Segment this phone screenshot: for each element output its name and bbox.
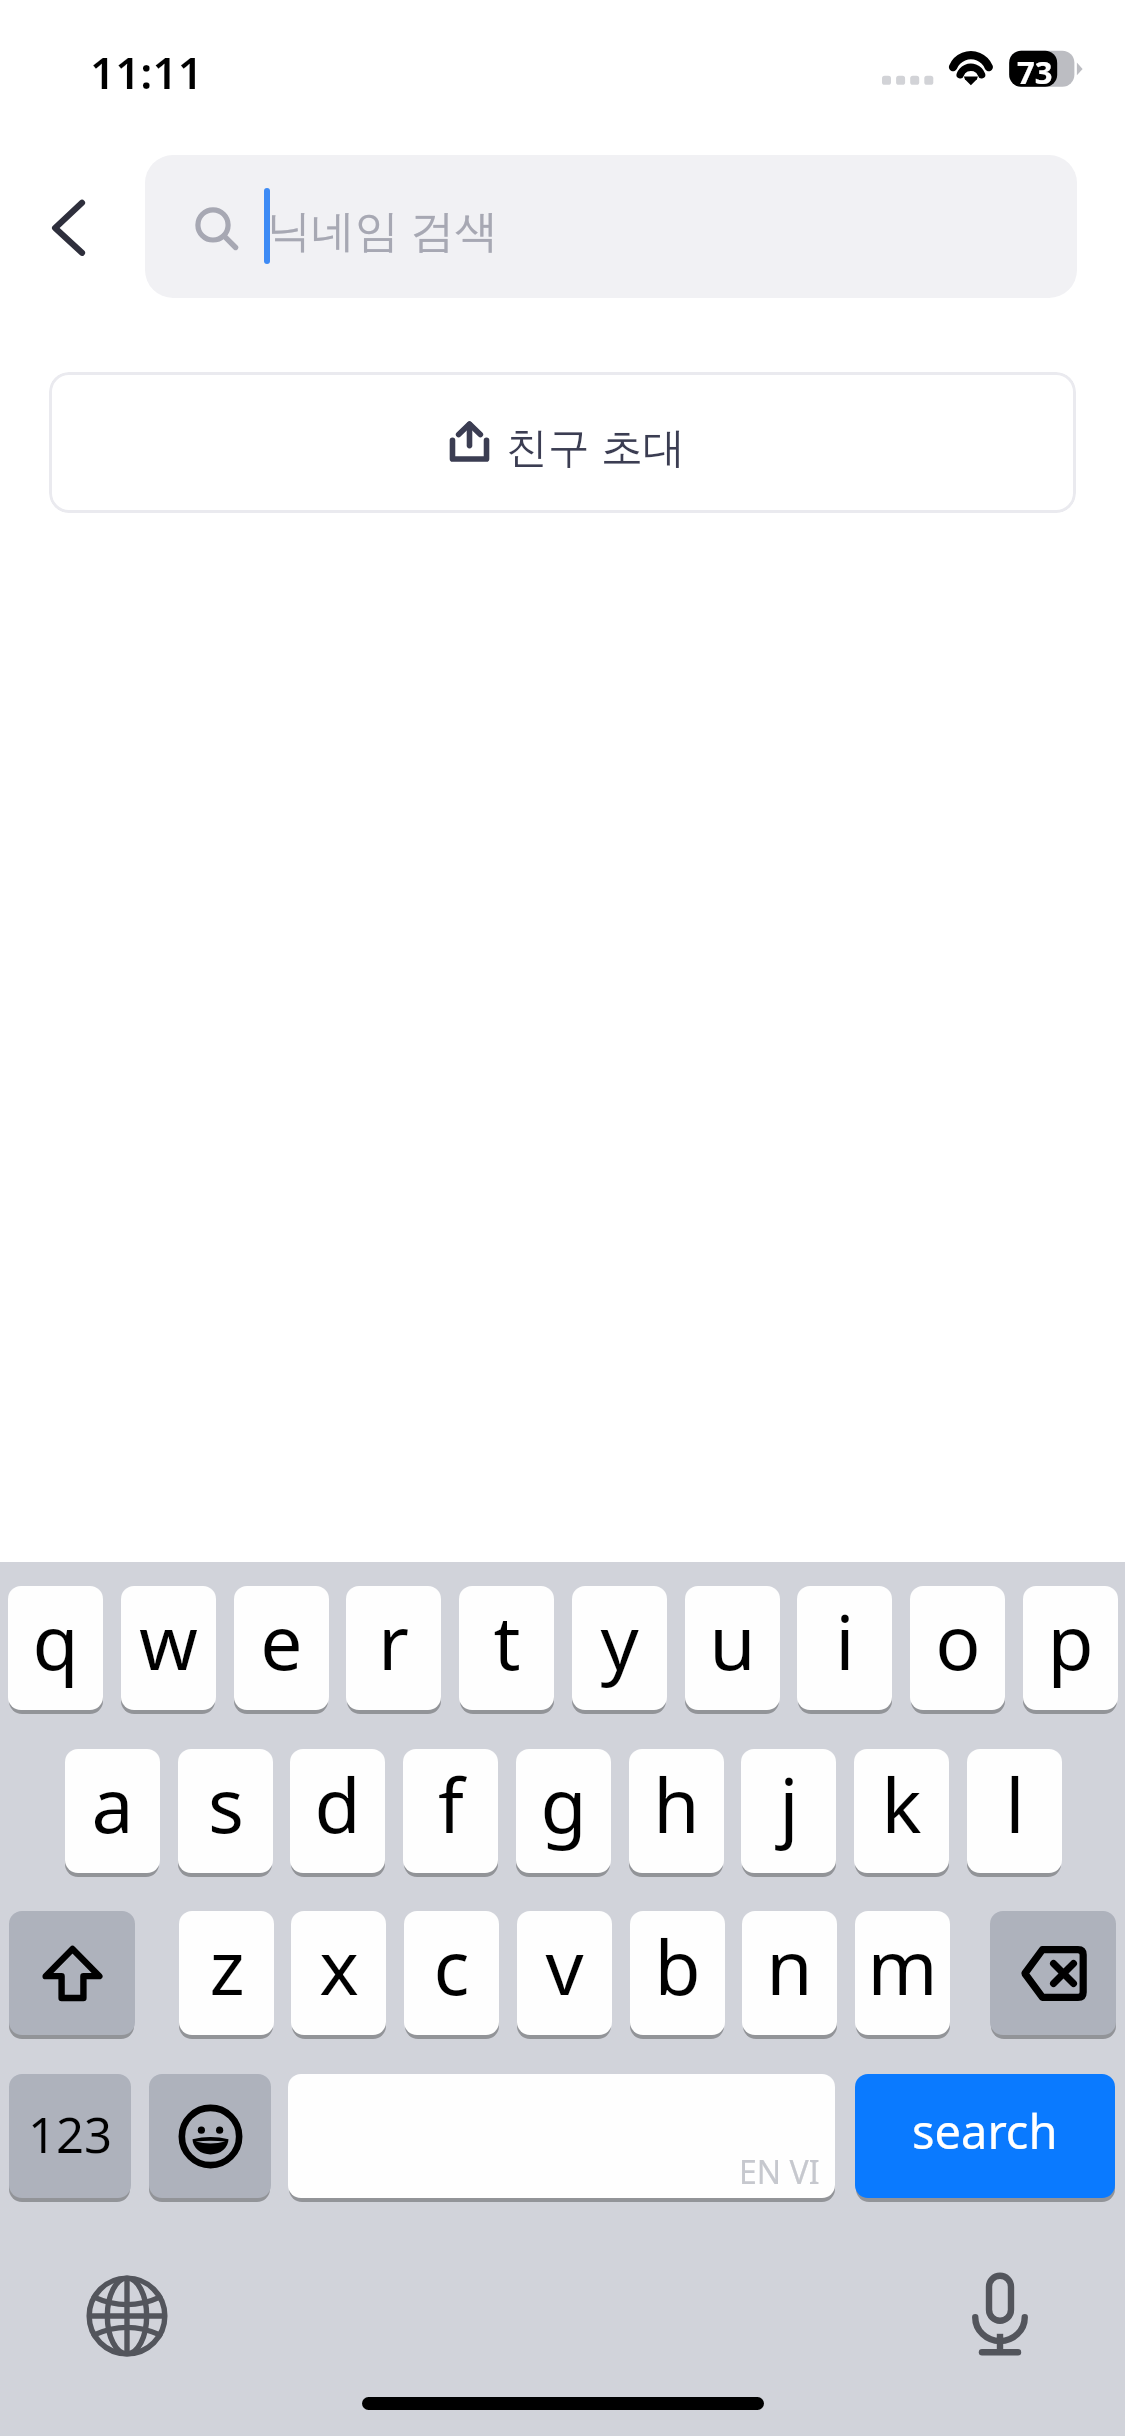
button[interactable]: g [516, 1749, 611, 1873]
staticText: l [1005, 1753, 1025, 1855]
button[interactable]: t [459, 1586, 554, 1710]
staticText: 123 [28, 2101, 113, 2168]
staticText: f [438, 1753, 464, 1855]
staticText: c [433, 1915, 470, 2017]
button[interactable]: p [1023, 1586, 1118, 1710]
staticText: p [1047, 1590, 1094, 1692]
staticText: 친구 초대 [506, 417, 685, 474]
button[interactable]: e [234, 1586, 329, 1710]
staticText: m [867, 1915, 938, 2017]
button[interactable]: o [910, 1586, 1005, 1710]
staticText: 닉네임 검색 [267, 199, 499, 259]
button[interactable]: j [741, 1749, 836, 1873]
staticText: h [653, 1753, 700, 1855]
button[interactable]: b [630, 1911, 725, 2035]
staticText: v [545, 1915, 584, 2017]
staticText: q [32, 1590, 79, 1692]
staticText: i [835, 1590, 855, 1692]
staticText: e [260, 1590, 303, 1692]
button[interactable]: Back [14, 172, 124, 282]
button[interactable]: f [403, 1749, 498, 1873]
button[interactable]: q [8, 1586, 103, 1710]
staticText: a [91, 1753, 134, 1855]
button[interactable]: r [346, 1586, 441, 1710]
staticText: o [935, 1590, 981, 1692]
staticText: z [209, 1915, 245, 2017]
staticText: r [378, 1590, 409, 1692]
button[interactable]: Emoji [149, 2074, 271, 2198]
staticText: 11:11 [90, 42, 203, 102]
button[interactable]: Switch keyboard [77, 2266, 177, 2366]
staticText: k [881, 1753, 922, 1855]
button[interactable]: x [291, 1911, 386, 2035]
button[interactable]: n [742, 1911, 837, 2035]
staticText: EN VI [739, 2150, 820, 2194]
staticText: s [208, 1753, 244, 1855]
staticText: d [314, 1753, 361, 1855]
staticText: search [912, 2099, 1058, 2163]
staticText: u [709, 1590, 756, 1692]
button[interactable]: c [404, 1911, 499, 2035]
button[interactable]: m [855, 1911, 950, 2035]
staticText: t [493, 1590, 521, 1692]
button[interactable]: u [685, 1586, 780, 1710]
button[interactable]: l [967, 1749, 1062, 1873]
button[interactable]: k [854, 1749, 949, 1873]
button[interactable]: Dictate [948, 2262, 1052, 2366]
button[interactable]: h [629, 1749, 724, 1873]
staticText: n [766, 1915, 813, 2017]
button[interactable]: w [121, 1586, 216, 1710]
staticText: x [319, 1915, 359, 2017]
button[interactable]: Backspace [990, 1911, 1116, 2035]
staticText: 73 [1017, 51, 1053, 87]
button[interactable]: Numbers [9, 2074, 131, 2198]
button[interactable]: v [517, 1911, 612, 2035]
staticText: g [540, 1753, 587, 1855]
button[interactable]: s [178, 1749, 273, 1873]
staticText: b [654, 1915, 701, 2017]
staticText: j [779, 1753, 799, 1855]
button[interactable]: 닉네임 검색 [145, 155, 1077, 298]
button[interactable]: 친구 초대 [49, 372, 1076, 513]
button[interactable]: z [179, 1911, 274, 2035]
button[interactable]: y [572, 1586, 667, 1710]
button[interactable]: Shift [9, 1911, 135, 2035]
button[interactable]: Search [855, 2074, 1115, 2198]
staticText: y [600, 1590, 639, 1692]
staticText: w [139, 1590, 198, 1692]
button[interactable]: Space [288, 2074, 835, 2198]
button[interactable]: d [290, 1749, 385, 1873]
button[interactable]: a [65, 1749, 160, 1873]
button[interactable]: i [797, 1586, 892, 1710]
